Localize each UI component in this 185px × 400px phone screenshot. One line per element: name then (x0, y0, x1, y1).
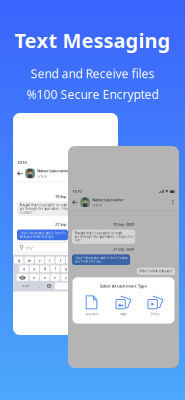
staticText: w (28, 257, 31, 263)
staticText: Select Attachment Type (100, 283, 147, 289)
staticText: a (23, 266, 25, 271)
staticText: f (55, 266, 56, 271)
staticText: Send and Receive files (30, 66, 154, 81)
button[interactable]: Video (142, 294, 169, 317)
staticText: Hey! (26, 245, 34, 250)
button[interactable]: Image (110, 294, 137, 317)
staticText: Text Messaging (14, 27, 170, 54)
staticText: g (64, 266, 66, 271)
button[interactable]: Back (17, 170, 25, 176)
staticText: 19 Sep 2020 (55, 194, 76, 199)
staticText: b (75, 275, 77, 280)
button[interactable]: Back (72, 199, 80, 205)
staticText: Image (119, 312, 127, 316)
staticText: z (33, 275, 35, 280)
staticText: s (33, 266, 35, 271)
staticText: e (38, 257, 40, 263)
staticText: They said that it is possible to reach y… (75, 231, 133, 242)
staticText: Didn't is that really you? (139, 269, 172, 273)
staticText: v (64, 275, 66, 280)
staticText: ?123 (22, 284, 29, 288)
staticText: I don't know who said it, but it's what … (20, 231, 66, 238)
staticText: 19 Sep 2020 (113, 222, 134, 227)
staticText: They said that it is possible to reach y… (20, 203, 72, 214)
staticText: m (95, 275, 99, 280)
staticText: online (37, 173, 47, 179)
staticText: x (44, 275, 46, 280)
staticText: o (101, 257, 103, 263)
staticText: p (111, 257, 113, 263)
staticText: n (85, 275, 87, 280)
staticText: d (44, 266, 46, 271)
staticText: Document (84, 312, 98, 316)
staticText: %100 Secure Encrypted (26, 86, 158, 102)
staticText: 21 Sep 2020 (55, 222, 76, 227)
staticText: t (60, 257, 61, 263)
staticText: , (38, 283, 39, 289)
staticText: Video (151, 312, 160, 316)
staticText: I don't know who said it, but it's what … (75, 256, 128, 263)
staticText: online (92, 202, 102, 207)
staticText: q (18, 257, 20, 263)
staticText: 10:10 (72, 189, 81, 194)
staticText: Name Lastname (37, 168, 68, 173)
staticText: u (80, 257, 82, 263)
staticText: 21 Sep 2020 (113, 246, 134, 252)
button[interactable]: Document (78, 294, 105, 317)
staticText: r (49, 257, 51, 263)
staticText: Name Lastname (92, 197, 123, 202)
staticText: i (91, 257, 92, 263)
staticText: 10:10 (17, 160, 26, 165)
button[interactable]: More options (171, 200, 175, 205)
staticText: c (54, 275, 56, 280)
